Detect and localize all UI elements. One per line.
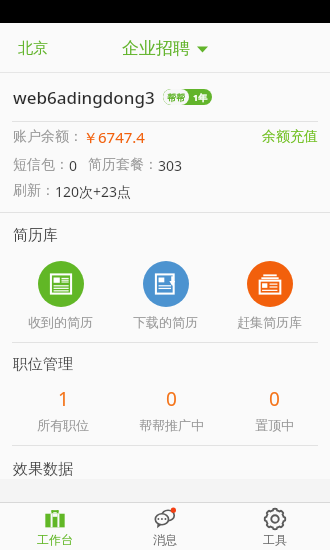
staticText: 工具: [263, 532, 287, 547]
staticText: 0: [269, 386, 280, 412]
staticText: 帮帮: [167, 92, 185, 103]
button[interactable]: 北京: [14, 35, 52, 62]
staticText: 1: [58, 386, 69, 412]
staticText: 工作台: [37, 532, 73, 547]
staticText: 效果数据: [13, 460, 73, 479]
staticText: 0: [69, 156, 78, 175]
button[interactable]: 余额充值: [250, 124, 330, 150]
staticText: 赶集简历库: [237, 314, 302, 330]
staticText: 账户余额：: [13, 128, 83, 146]
button[interactable]: 下载的简历: [121, 259, 210, 332]
staticText: ￥6747.4: [83, 127, 145, 147]
staticText: 短信包：: [13, 156, 69, 174]
staticText: 120次+23点: [55, 182, 132, 201]
staticText: 1年: [193, 91, 208, 103]
button[interactable]: 工作台: [0, 503, 110, 550]
staticText: 简历库: [13, 226, 58, 245]
staticText: web6adingdong3: [13, 86, 155, 109]
button[interactable]: 赶集简历库: [225, 259, 314, 332]
staticText: 303: [158, 156, 183, 175]
staticText: 下载的简历: [133, 314, 198, 330]
button[interactable]: 1: [23, 384, 103, 435]
button[interactable]: 工具: [220, 503, 330, 550]
button[interactable]: 消息: [110, 503, 220, 550]
staticText: 北京: [18, 39, 48, 58]
staticText: 职位管理: [13, 355, 73, 374]
staticText: 收到的简历: [28, 314, 93, 330]
staticText: 余额充值: [262, 128, 318, 146]
button[interactable]: web6adingdong3: [0, 73, 330, 121]
staticText: 置顶中: [255, 417, 294, 433]
staticText: 企业招聘: [122, 38, 190, 59]
staticText: 刷新：: [13, 182, 55, 200]
button[interactable]: 0: [125, 384, 218, 435]
button[interactable]: 企业招聘: [116, 34, 214, 63]
staticText: 所有职位: [37, 417, 89, 433]
staticText: 消息: [153, 532, 177, 547]
button[interactable]: 收到的简历: [16, 259, 105, 332]
button[interactable]: 0: [241, 384, 308, 435]
staticText: 简历套餐：: [88, 156, 158, 174]
staticText: 帮帮推广中: [139, 417, 204, 433]
staticText: 0: [166, 386, 177, 412]
